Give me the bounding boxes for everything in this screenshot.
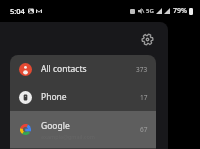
staticText: 67 — [140, 125, 148, 134]
staticText: All contacts — [41, 63, 87, 75]
staticText: 5G — [146, 7, 154, 15]
staticText: 79% — [173, 6, 187, 16]
staticText: Google — [41, 120, 70, 132]
button[interactable]: Phone — [10, 83, 156, 111]
staticText: Phone — [41, 91, 67, 103]
staticText: 17 — [140, 93, 148, 102]
button[interactable]: All contacts — [10, 55, 156, 83]
button[interactable]: Google — [10, 111, 156, 148]
button[interactable]: Settings — [139, 31, 156, 48]
staticText: 5:04 — [10, 6, 25, 16]
staticText: 373 — [136, 65, 148, 74]
